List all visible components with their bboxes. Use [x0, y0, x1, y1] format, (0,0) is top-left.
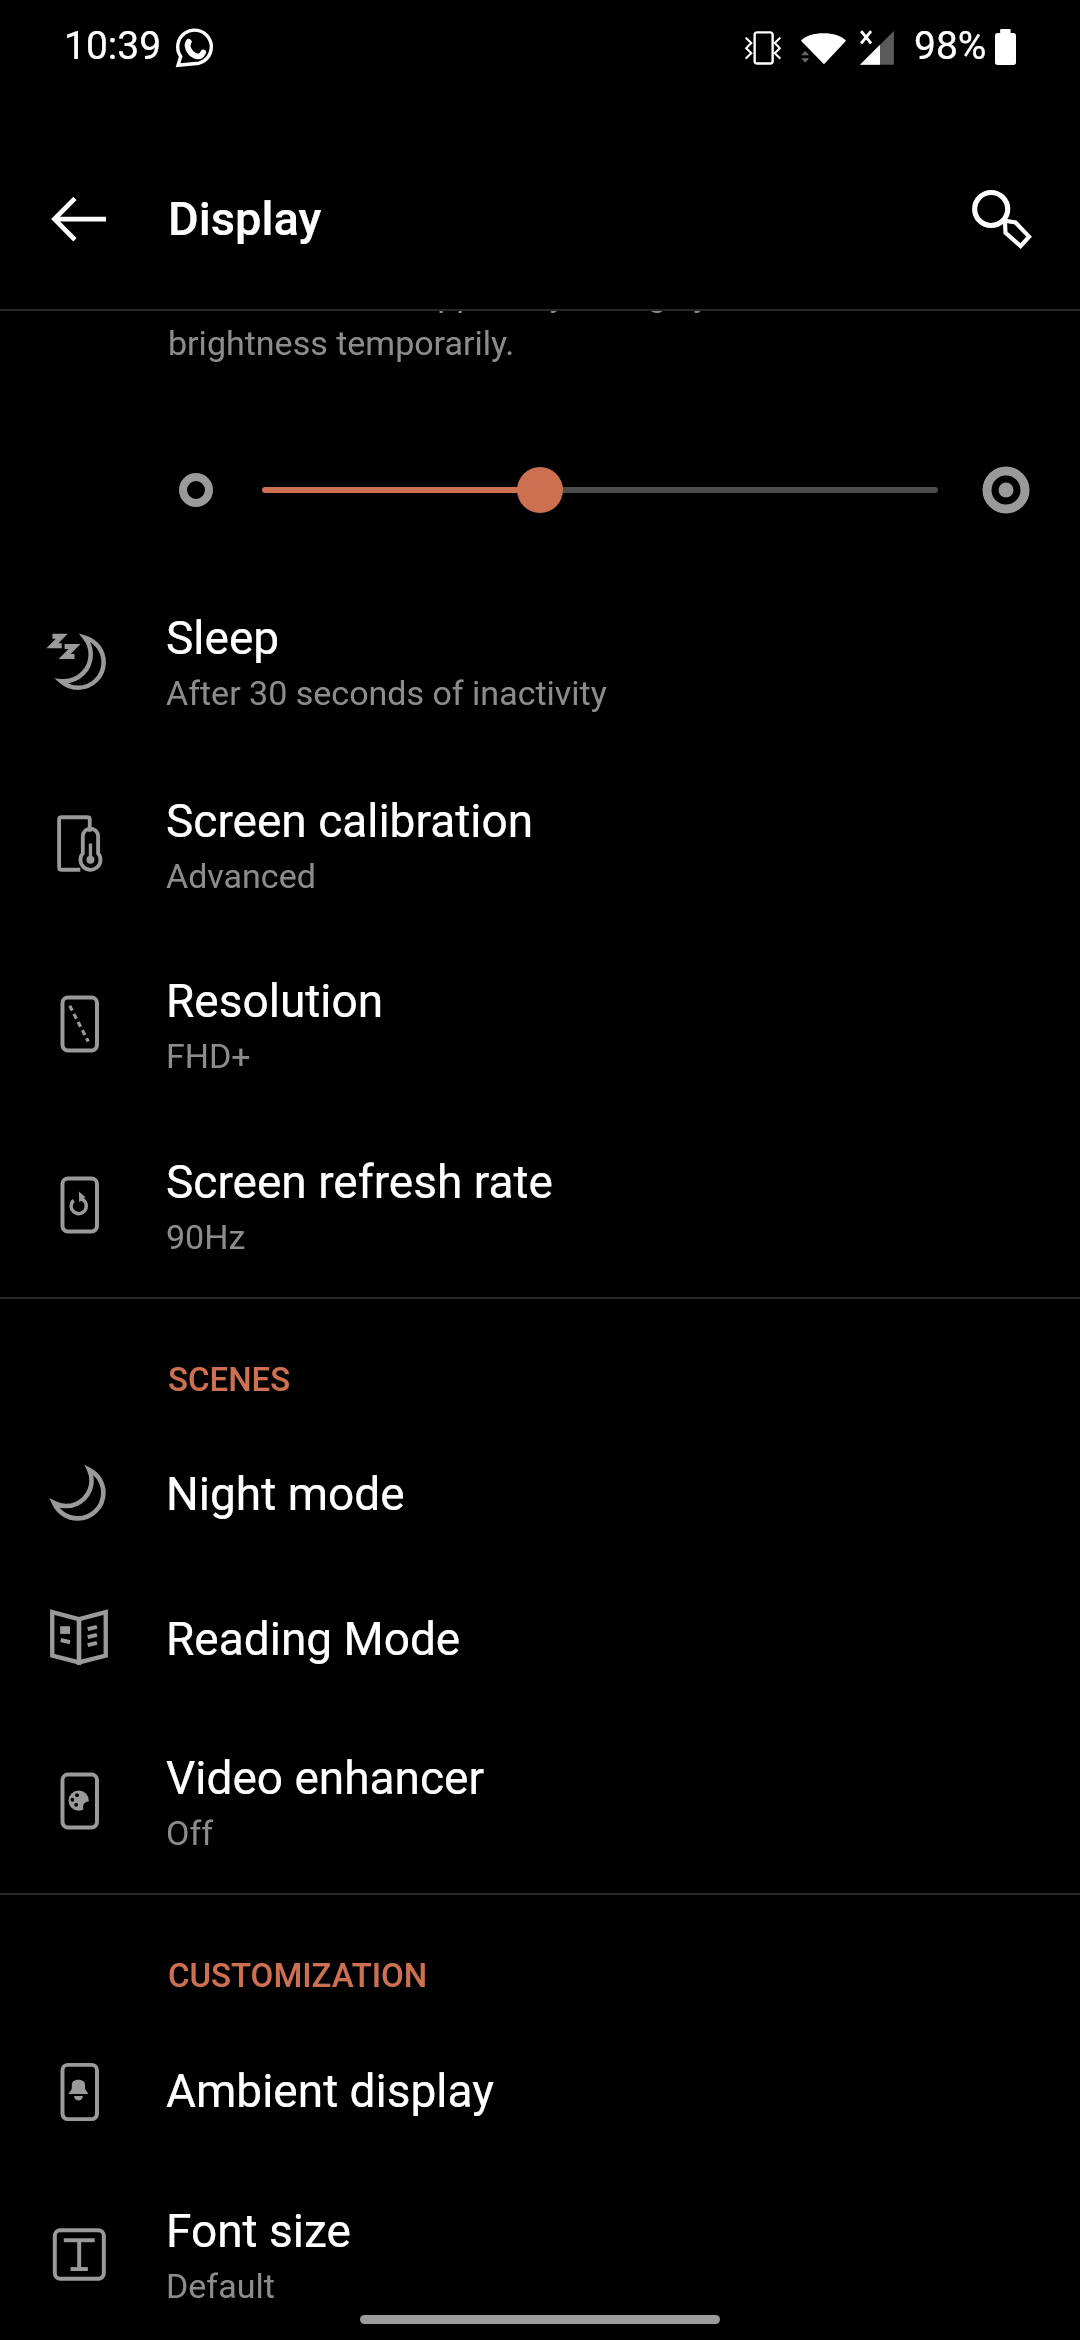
button[interactable]: Reading Mode [0, 1566, 1080, 1711]
button[interactable]: Search [942, 152, 1048, 258]
button[interactable] [0, 430, 1080, 550]
staticText: Screen calibration [166, 794, 534, 848]
button[interactable]: Video enhancer [0, 1705, 1080, 1885]
staticText: SCENES [168, 1360, 291, 1399]
staticText: Ambient display [166, 2064, 494, 2118]
button[interactable]: Screen refresh rate [0, 1109, 1080, 1289]
button[interactable]: Font size [0, 2158, 1080, 2338]
button[interactable]: Night mode [0, 1421, 1080, 1566]
staticText: 90Hz [166, 1217, 246, 1257]
staticText: CUSTOMIZATION [168, 1956, 428, 1995]
staticText: After 30 seconds of inactivity [166, 673, 607, 713]
staticText: Reading Mode [166, 1612, 461, 1666]
staticText: Display [168, 191, 322, 246]
staticText: Default [166, 2266, 275, 2306]
staticText: 98% [914, 23, 987, 69]
button[interactable]: Back [26, 152, 132, 258]
staticText: Advanced [166, 856, 316, 896]
button[interactable]: Resolution [0, 928, 1080, 1108]
staticText: Night mode [166, 1467, 405, 1521]
staticText: Font size [166, 2204, 351, 2258]
staticText: 10:39 [64, 23, 162, 69]
staticText: Screen refresh rate [166, 1155, 553, 1209]
staticText: Sleep [166, 611, 280, 665]
staticText: FHD+ [166, 1036, 251, 1076]
staticText: brightness temporarily. [168, 323, 515, 363]
staticText: Apps may change your [415, 274, 759, 314]
button[interactable]: Screen calibration [0, 748, 1080, 928]
staticText: Resolution [166, 974, 384, 1028]
button[interactable]: Ambient display [0, 2018, 1080, 2163]
button[interactable]: Sleep [0, 565, 1080, 745]
staticText: Video enhancer [166, 1751, 485, 1805]
staticText: Off [166, 1813, 214, 1853]
